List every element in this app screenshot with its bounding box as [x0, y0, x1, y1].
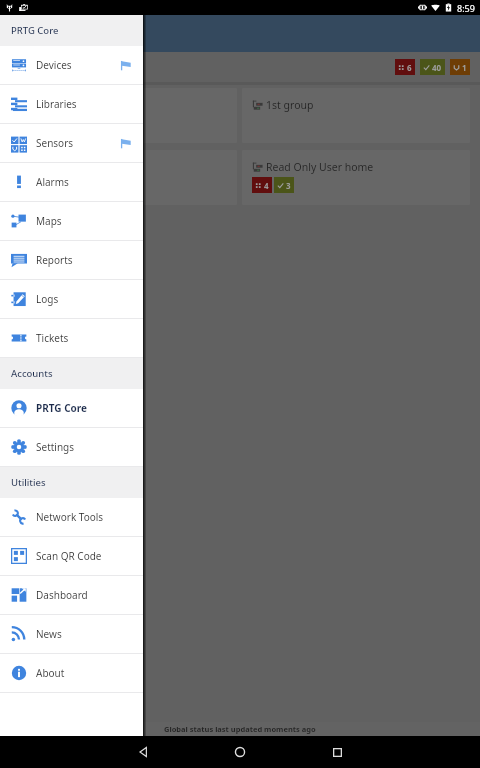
staticText: 40: [432, 62, 442, 73]
button[interactable]: Sensors: [0, 124, 143, 163]
staticText: 1st group: [266, 98, 314, 112]
staticText: Logs: [36, 292, 59, 306]
button[interactable]: [10, 88, 237, 143]
staticText: Utilities: [11, 476, 46, 489]
staticText: Global status last updated moments ago: [164, 724, 316, 734]
staticText: Read Only User home: [266, 160, 374, 174]
staticText: Settings: [36, 440, 75, 454]
staticText: 8:59: [457, 2, 475, 14]
button[interactable]: PRTG Core: [0, 389, 143, 428]
staticText: Network Tools: [36, 510, 104, 524]
staticText: Sensors: [36, 136, 74, 150]
staticText: Dashboard: [36, 588, 88, 602]
button[interactable]: Scan QR Code: [0, 537, 143, 576]
button[interactable]: Settings: [0, 428, 143, 467]
button[interactable]: Recent apps: [315, 736, 359, 768]
staticText: 4: [264, 180, 269, 191]
button[interactable]: Libraries: [0, 85, 143, 124]
staticText: 3: [286, 180, 291, 191]
staticText: Devices: [36, 58, 72, 72]
staticText: PRTG Core: [11, 24, 59, 37]
staticText: 6: [407, 62, 412, 73]
staticText: Accounts: [11, 367, 53, 380]
button[interactable]: Read Only User home: [242, 150, 470, 205]
staticText: 1: [462, 62, 467, 73]
button[interactable]: Devices: [0, 46, 143, 85]
button[interactable]: Back: [121, 736, 165, 768]
staticText: Reports: [36, 253, 73, 267]
staticText: Maps: [36, 214, 62, 228]
staticText: News: [36, 627, 62, 641]
staticText: Alarms: [36, 175, 69, 189]
staticText: Libraries: [36, 97, 77, 111]
button[interactable]: About: [0, 654, 143, 693]
button[interactable]: 1st group: [242, 88, 470, 143]
button[interactable]: News: [0, 615, 143, 654]
staticText: Tickets: [36, 331, 69, 345]
button[interactable]: [10, 150, 237, 205]
staticText: PRTG Core: [36, 401, 88, 415]
button[interactable]: Maps: [0, 202, 143, 241]
button[interactable]: Dashboard: [0, 576, 143, 615]
button[interactable]: Home: [218, 736, 262, 768]
button[interactable]: Alarms: [0, 163, 143, 202]
button[interactable]: Reports: [0, 241, 143, 280]
button[interactable]: Network Tools: [0, 498, 143, 537]
button[interactable]: Logs: [0, 280, 143, 319]
button[interactable]: Tickets: [0, 319, 143, 358]
staticText: About: [36, 666, 65, 680]
staticText: 8:59: [457, 2, 475, 14]
staticText: Scan QR Code: [36, 549, 102, 563]
